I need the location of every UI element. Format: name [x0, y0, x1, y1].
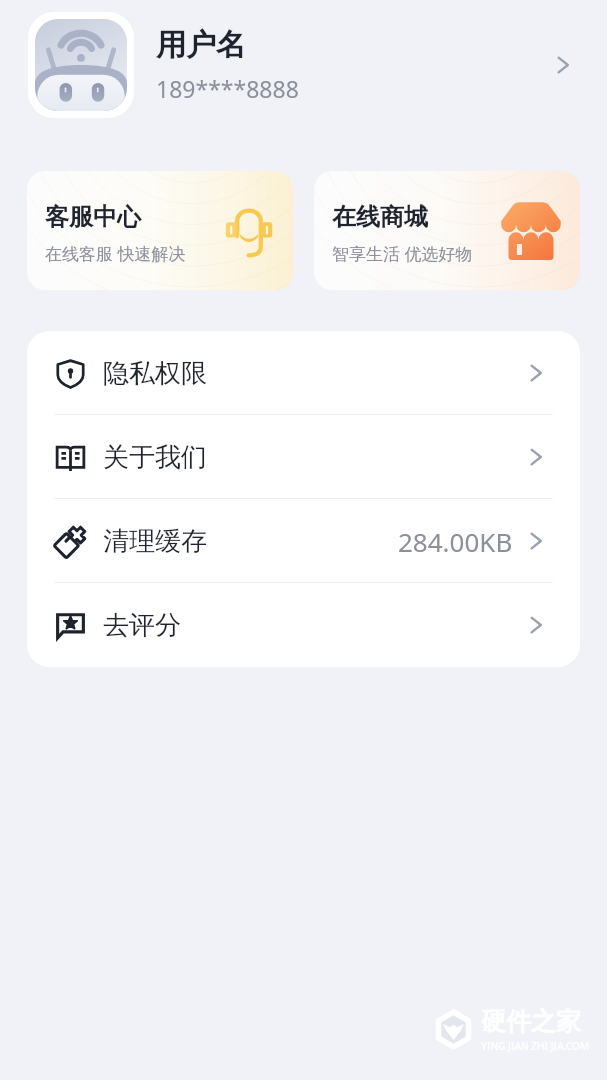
button[interactable]: 关于我们 — [27, 415, 580, 499]
staticText: 隐私权限 — [103, 357, 207, 390]
staticText: 清理缓存 — [103, 525, 207, 558]
button[interactable]: 隐私权限 — [27, 331, 580, 415]
staticText: YING JIAN ZHI JIA.COM — [481, 1039, 590, 1053]
button[interactable]: 用户名 — [0, 9, 607, 120]
staticText: 去评分 — [103, 609, 181, 642]
staticText: 用户名 — [156, 26, 246, 64]
staticText: 在线商城 — [332, 202, 428, 232]
staticText: 硬件之家 — [481, 1006, 581, 1037]
button[interactable]: 在线商城 — [314, 171, 580, 290]
button[interactable]: 客服中心 — [27, 171, 293, 290]
staticText: 189****8888 — [156, 73, 299, 104]
staticText: 在线客服 快速解决 — [45, 242, 186, 265]
other: Logo — [436, 1009, 471, 1050]
staticText: 客服中心 — [45, 202, 141, 232]
staticText: 关于我们 — [103, 441, 207, 474]
button[interactable]: 清理缓存 — [27, 499, 580, 583]
staticText: 284.00KB — [398, 524, 513, 559]
staticText: 智享生活 优选好物 — [332, 242, 473, 265]
button[interactable]: 去评分 — [27, 583, 580, 667]
